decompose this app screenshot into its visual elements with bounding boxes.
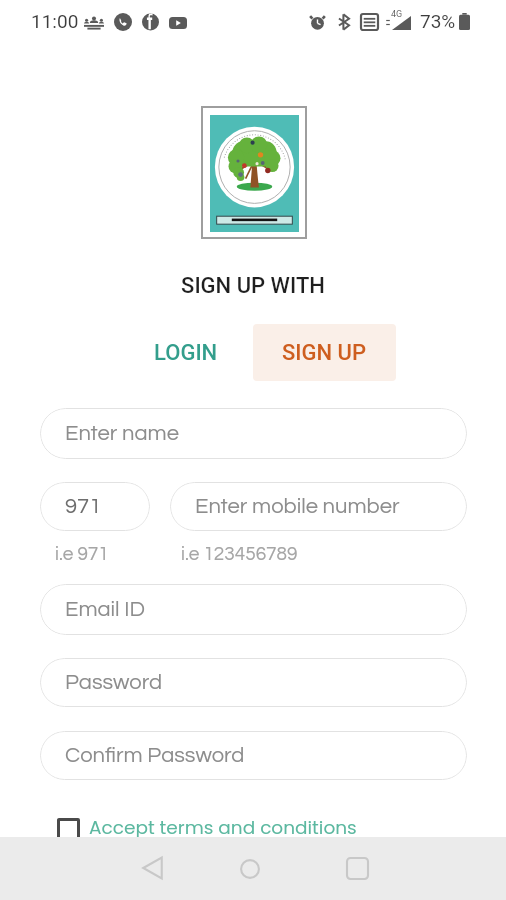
button[interactable]: SIGN UP — [253, 324, 396, 381]
button[interactable]: Confirm Password — [40, 731, 467, 780]
staticText: LOGIN — [154, 340, 218, 366]
button[interactable]: Back — [118, 837, 186, 900]
button[interactable]: Enter name — [40, 408, 467, 459]
button[interactable]: Email ID — [40, 584, 467, 635]
staticText: Confirm Password — [65, 744, 245, 767]
staticText: Password — [65, 671, 163, 694]
staticText: Accept terms and conditions — [89, 815, 357, 841]
staticText: i.e 123456789 — [181, 544, 298, 564]
staticText: i.e 971 — [55, 544, 109, 564]
button[interactable]: LOGIN — [136, 324, 236, 381]
staticText: Enter mobile number — [195, 495, 400, 518]
button[interactable]: Home — [216, 837, 284, 900]
button[interactable]: Accept terms and conditions — [57, 808, 357, 848]
staticText: 73% — [420, 10, 456, 32]
staticText: SIGN UP — [282, 340, 367, 366]
button[interactable]: Password — [40, 658, 467, 707]
staticText: SIGN UP WITH — [181, 273, 325, 299]
staticText: 11:00 — [31, 10, 79, 32]
staticText: Enter name — [65, 422, 179, 445]
button[interactable]: Enter mobile number — [170, 482, 467, 531]
staticText: 4G — [391, 9, 403, 20]
staticText: 971 — [65, 495, 102, 518]
button[interactable]: 971 — [40, 482, 150, 531]
button[interactable]: Recent apps — [323, 837, 391, 900]
staticText: Email ID — [65, 598, 145, 621]
